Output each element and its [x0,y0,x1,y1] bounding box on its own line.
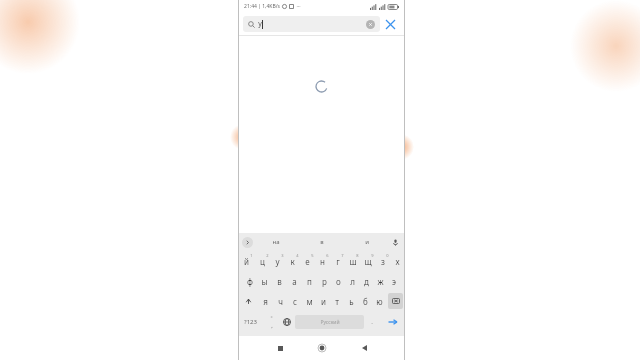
button[interactable]: г [330,251,345,271]
button[interactable]: у [270,251,285,271]
staticText: н [320,256,325,267]
button[interactable]: Backspace [388,293,403,309]
staticText: м [306,296,313,307]
button[interactable]: щ [360,251,375,271]
staticText: с [293,296,297,307]
button[interactable]: е [300,251,315,271]
button[interactable]: м [302,291,316,311]
button[interactable]: Back [350,336,378,360]
button[interactable]: Recent apps [266,336,294,360]
staticText: ° [270,315,273,322]
staticText: 3 [281,253,284,258]
staticText: ы [261,276,268,287]
button[interactable]: ° [263,311,279,333]
staticText: . [371,318,373,326]
staticText: у [275,256,280,267]
button[interactable]: н [315,251,330,271]
button[interactable]: д [359,271,373,291]
button[interactable]: ь [344,291,358,311]
button[interactable]: ж [373,271,387,291]
button[interactable]: ы [257,271,272,291]
staticText: о [336,276,341,287]
button[interactable]: р [317,271,331,291]
staticText: 1 [250,253,253,258]
button[interactable]: Shift [238,291,258,311]
button[interactable]: в [299,233,344,251]
staticText: х [395,256,400,267]
staticText: в [320,238,324,246]
button[interactable]: в [272,271,287,291]
staticText: ч [278,296,283,307]
button[interactable]: б [358,291,372,311]
button[interactable]: Voice input [389,236,401,248]
button[interactable]: ф [242,271,257,291]
staticText: ж [377,276,384,287]
staticText: е [305,256,310,267]
button[interactable]: Change language [279,311,295,333]
staticText: 6 [326,253,329,258]
button[interactable]: а [287,271,302,291]
staticText: ?123 [244,318,257,326]
button[interactable]: п [302,271,317,291]
staticText: б [363,296,368,307]
staticText: л [350,276,355,287]
button[interactable]: More options [242,237,253,248]
staticText: Русский [320,319,340,326]
staticText: 9 [371,253,374,258]
staticText: 5 [311,253,314,258]
button[interactable]: э [387,271,401,291]
staticText: я [263,296,268,307]
button[interactable]: Close search [380,14,400,34]
button[interactable]: х [390,251,405,271]
staticText: ··· [296,3,301,10]
button[interactable]: т [330,291,344,311]
button[interactable]: Clear text [366,20,375,29]
staticText: к [290,256,295,267]
staticText: в [277,276,282,287]
button[interactable]: и [316,291,330,311]
button[interactable]: Search [380,311,405,333]
button[interactable]: и [344,233,389,251]
staticText: у [258,19,262,29]
button[interactable]: о [331,271,345,291]
staticText: щ [364,256,372,267]
button[interactable]: й [238,251,254,271]
staticText: и [321,296,326,307]
staticText: й [244,256,249,267]
staticText: ь [349,296,354,307]
staticText: г [336,256,340,267]
button[interactable]: л [345,271,359,291]
button[interactable]: с [288,291,302,311]
staticText: 8 [356,253,359,258]
staticText: р [322,276,327,287]
staticText: ц [260,256,265,267]
button[interactable]: ш [345,251,360,271]
button[interactable]: ю [372,291,386,311]
staticText: ф [247,276,253,287]
staticText: 2 [266,253,269,258]
button[interactable]: ?123 [238,311,263,333]
staticText: , [271,322,273,330]
staticText: ю [376,296,383,307]
button[interactable]: Русский [295,315,364,329]
button[interactable]: ч [273,291,288,311]
button[interactable]: ц [254,251,270,271]
button[interactable]: к [285,251,300,271]
staticText: э [392,276,396,287]
staticText: 7 [341,253,344,258]
staticText: 4 [296,253,299,258]
button[interactable]: у [243,16,380,32]
button[interactable]: на [253,233,299,251]
button[interactable]: Home [308,336,336,360]
staticText: и [365,238,369,246]
button[interactable]: я [258,291,273,311]
staticText: а [292,276,297,287]
staticText: п [307,276,312,287]
staticText: ш [349,256,357,267]
staticText: 21:44 | 1,4KB/s [244,3,280,10]
staticText: д [364,276,369,287]
staticText: 0 [386,253,389,258]
staticText: з [381,256,385,267]
button[interactable]: з [375,251,390,271]
